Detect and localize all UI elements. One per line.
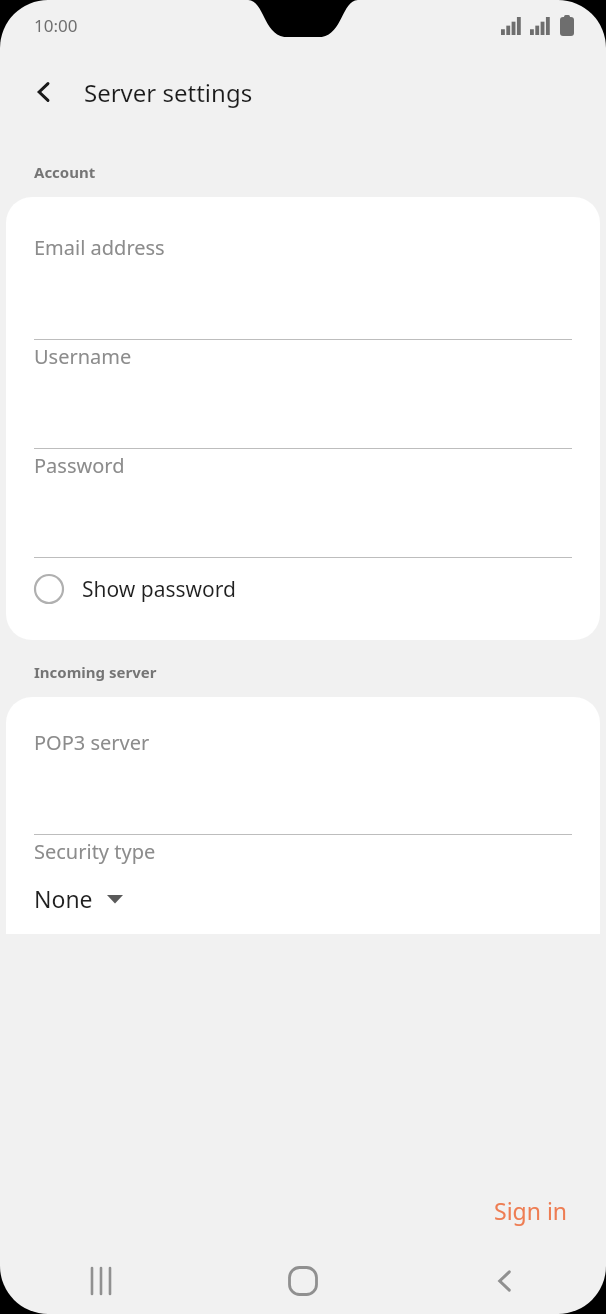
- staticText: POP3 server: [34, 729, 150, 756]
- staticText: Incoming server: [34, 662, 157, 682]
- staticText: 10:00: [34, 14, 78, 37]
- staticText: Email address: [34, 234, 165, 261]
- button[interactable]: Back: [404, 1248, 606, 1314]
- staticText: None: [34, 883, 93, 914]
- staticText: Username: [34, 343, 132, 370]
- staticText: Server settings: [84, 76, 253, 109]
- button[interactable]: Sign in: [482, 1187, 580, 1234]
- button[interactable]: POP3 server: [6, 726, 600, 835]
- staticText: Security type: [34, 838, 156, 865]
- staticText: Sign in: [494, 1195, 568, 1226]
- button[interactable]: Home: [202, 1248, 404, 1314]
- button[interactable]: Recent apps: [0, 1248, 202, 1314]
- staticText: Show password: [82, 575, 236, 604]
- button[interactable]: Security type: [6, 835, 600, 934]
- staticText: Password: [34, 452, 125, 479]
- staticText: Account: [34, 162, 96, 182]
- button[interactable]: Password: [6, 449, 600, 558]
- button[interactable]: Show password: [6, 558, 600, 620]
- button[interactable]: Back: [20, 68, 68, 116]
- button[interactable]: Username: [6, 340, 600, 449]
- button[interactable]: Email address: [6, 231, 600, 340]
